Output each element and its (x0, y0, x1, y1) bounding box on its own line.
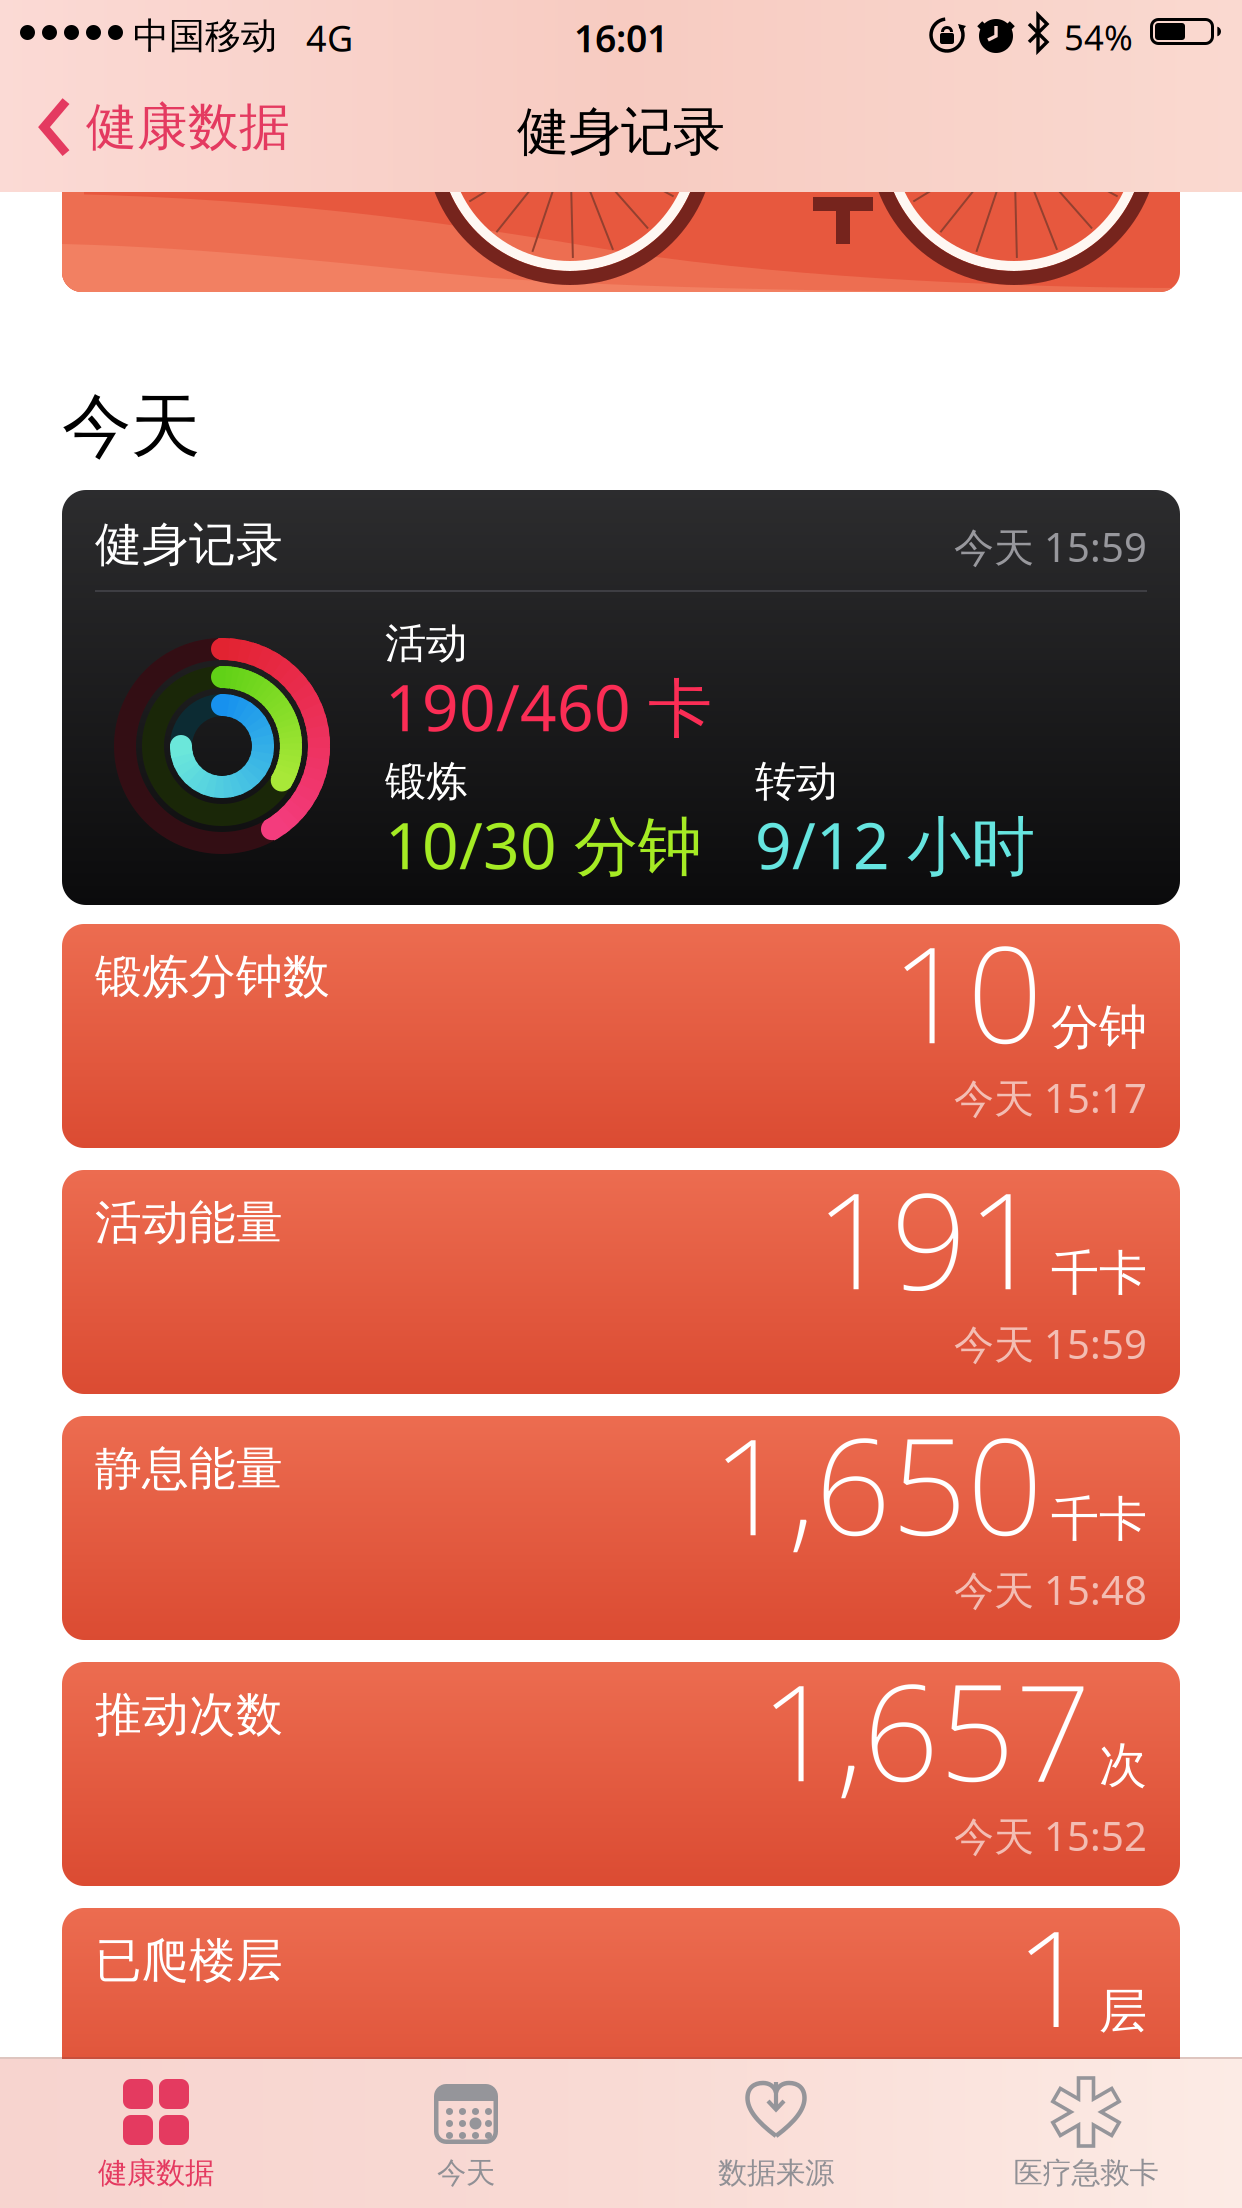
staticText: 推动次数 (95, 1686, 283, 1743)
staticText: 今天 (62, 384, 200, 469)
staticText: 16:01 (574, 13, 668, 63)
staticText: 健康数据 (98, 2155, 214, 2191)
button[interactable]: 健身记录 (62, 490, 1180, 905)
button[interactable]: 锻炼分钟数 (62, 924, 1180, 1148)
staticText: 医疗急救卡 (1013, 2155, 1158, 2191)
button[interactable]: 健身记录横幅 (62, 192, 1180, 292)
staticText: 10/30 分钟 (385, 802, 702, 887)
staticText: 今天 15:59 (954, 1317, 1147, 1370)
staticText: 190/460 卡 (385, 664, 712, 749)
staticText: 今天 15:48 (954, 1563, 1147, 1616)
staticText: 活动能量 (95, 1194, 283, 1251)
staticText: 已爬楼层 (95, 1932, 283, 1989)
staticText: 数据来源 (718, 2155, 834, 2191)
staticText: 千卡 (1051, 1490, 1147, 1549)
staticText: 层 (1099, 1982, 1147, 2041)
staticText: 健身记录 (517, 100, 725, 164)
staticText: 今天 15:17 (954, 1071, 1147, 1124)
staticText: 4G (306, 14, 353, 62)
staticText: 次 (1099, 1736, 1147, 1795)
staticText: 健康数据 (86, 96, 290, 158)
staticText: 1,650 (712, 1395, 1043, 1572)
staticText: 锻炼分钟数 (95, 948, 330, 1005)
staticText: 锻炼 (385, 756, 467, 807)
staticText: 54% (1064, 14, 1133, 60)
button[interactable]: 今天 (311, 2065, 621, 2205)
staticText: 健身记录 (95, 516, 283, 573)
staticText: 今天 15:59 (954, 520, 1147, 573)
button[interactable]: 活动能量 (62, 1170, 1180, 1394)
button[interactable]: 静息能量 (62, 1416, 1180, 1640)
staticText: 今天 (437, 2155, 495, 2191)
staticText: 转动 (755, 756, 837, 807)
staticText: 千卡 (1051, 1244, 1147, 1303)
button[interactable]: 健康数据 (40, 96, 290, 158)
staticText: 静息能量 (95, 1440, 283, 1497)
button[interactable]: 健康数据 (1, 2065, 311, 2205)
staticText: 191 (815, 1149, 1043, 1326)
button[interactable]: 推动次数 (62, 1662, 1180, 1886)
staticText: 活动 (385, 618, 467, 669)
staticText: 今天 15:52 (954, 1809, 1147, 1862)
staticText: 中国移动 (133, 14, 277, 58)
button[interactable]: 医疗急救卡 (931, 2065, 1241, 2205)
staticText: 10 (891, 903, 1043, 1080)
staticText: 分钟 (1051, 998, 1147, 1057)
staticText: 1,657 (760, 1641, 1091, 1818)
button[interactable]: 数据来源 (621, 2065, 931, 2205)
staticText: 1 (1015, 1887, 1091, 2064)
button[interactable]: 已爬楼层 (62, 1908, 1180, 2132)
staticText: 9/12 小时 (755, 802, 1035, 887)
